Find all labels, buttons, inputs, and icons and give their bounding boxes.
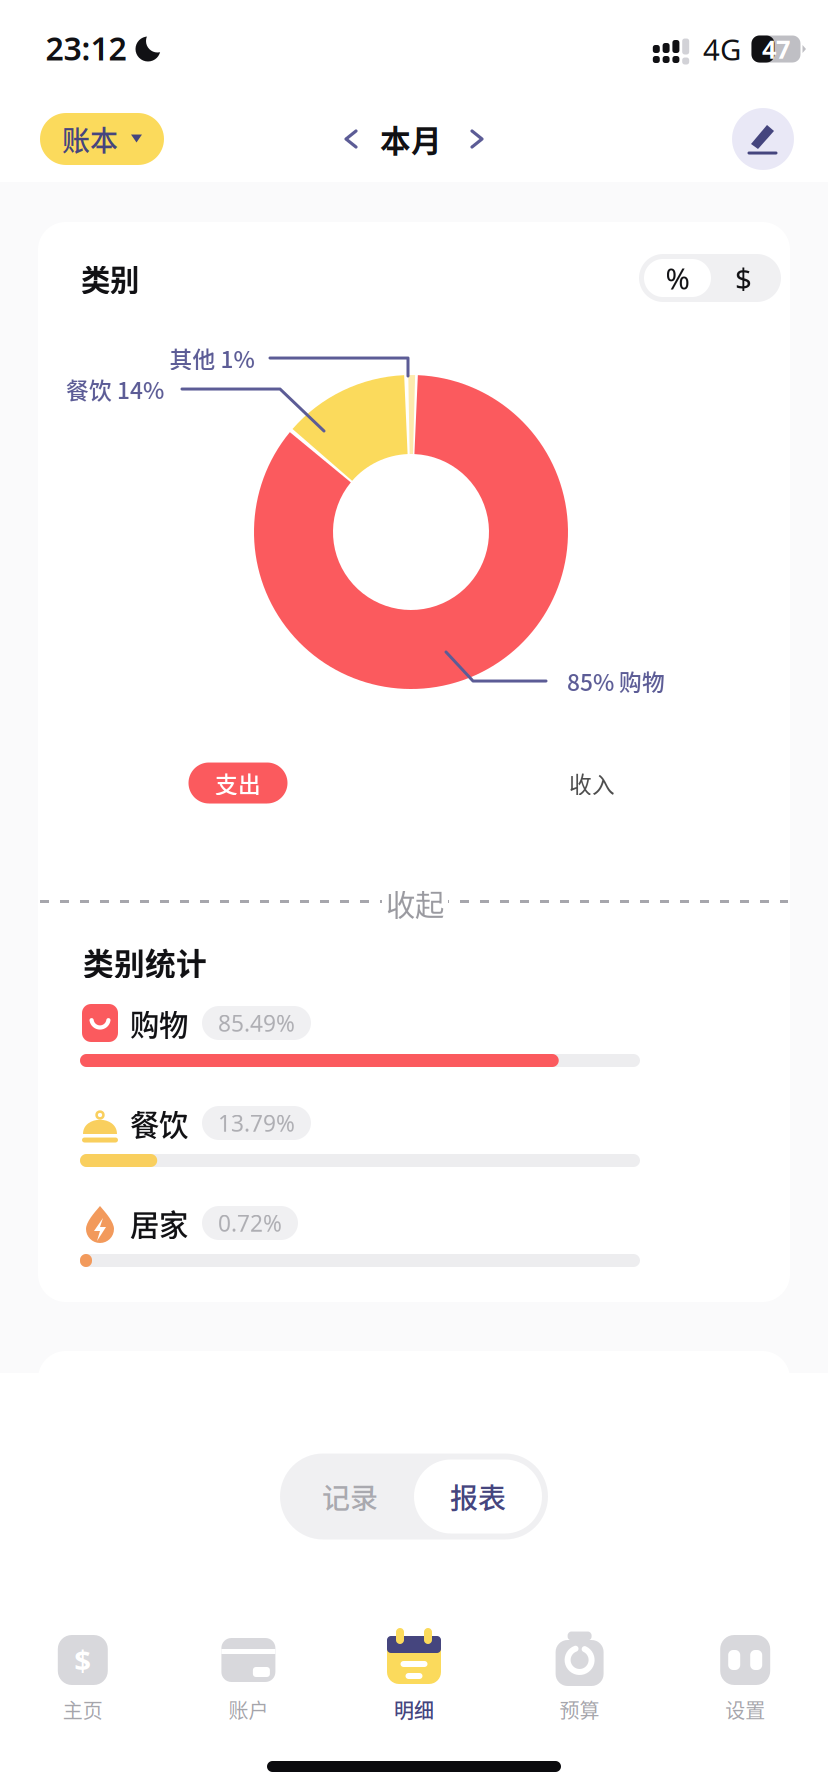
staticText: 本月 bbox=[380, 117, 442, 161]
staticText: 居家 bbox=[130, 1202, 188, 1244]
staticText: 其他 1% bbox=[169, 342, 254, 374]
button[interactable]: 设置 bbox=[662, 1634, 828, 1724]
staticText: 设置 bbox=[725, 1695, 765, 1724]
button[interactable]: 支出 bbox=[188, 762, 287, 803]
button[interactable]: Next month bbox=[462, 123, 492, 155]
staticText: 类别统计 bbox=[83, 940, 207, 984]
staticText: 0.72% bbox=[218, 1208, 282, 1238]
staticText: 85% 购物 bbox=[567, 665, 665, 697]
staticText: 收起 bbox=[386, 882, 444, 924]
button[interactable]: 预算 bbox=[497, 1634, 662, 1724]
staticText: 4G bbox=[703, 29, 741, 68]
button[interactable]: $ bbox=[0, 1634, 166, 1724]
staticText: 餐饮 bbox=[130, 1102, 188, 1144]
staticText: 23:12 bbox=[45, 27, 126, 69]
staticText: $ bbox=[74, 1640, 91, 1679]
staticText: 13.79% bbox=[218, 1108, 295, 1138]
button[interactable]: 账户 bbox=[166, 1634, 331, 1724]
staticText: 支出 bbox=[215, 767, 261, 799]
button[interactable]: % bbox=[644, 259, 711, 297]
button[interactable]: Previous month bbox=[336, 123, 366, 155]
staticText: 47 bbox=[762, 32, 790, 66]
button[interactable]: 记录 bbox=[286, 1459, 414, 1533]
staticText: 85.49% bbox=[218, 1008, 295, 1038]
staticText: 报表 bbox=[450, 1476, 506, 1517]
staticText: 类别 bbox=[81, 257, 139, 299]
staticText: 餐饮 14% bbox=[66, 373, 164, 405]
staticText: 收入 bbox=[569, 767, 615, 799]
button[interactable]: 账本 bbox=[40, 113, 164, 165]
staticText: 购物 bbox=[130, 1002, 188, 1044]
staticText: 主页 bbox=[63, 1695, 103, 1724]
button[interactable]: $ bbox=[711, 259, 776, 297]
button[interactable]: 报表 bbox=[414, 1459, 542, 1533]
staticText: 预算 bbox=[560, 1695, 600, 1724]
staticText: 账本 bbox=[62, 119, 118, 159]
staticText: 记录 bbox=[322, 1476, 378, 1517]
button[interactable]: Edit bbox=[732, 108, 794, 170]
button[interactable]: 收入 bbox=[542, 762, 641, 803]
staticText: $ bbox=[735, 258, 752, 297]
staticText: 账户 bbox=[228, 1695, 268, 1724]
staticText: % bbox=[665, 258, 689, 297]
button[interactable]: 明细 bbox=[331, 1634, 497, 1724]
staticText: 明细 bbox=[394, 1695, 434, 1724]
